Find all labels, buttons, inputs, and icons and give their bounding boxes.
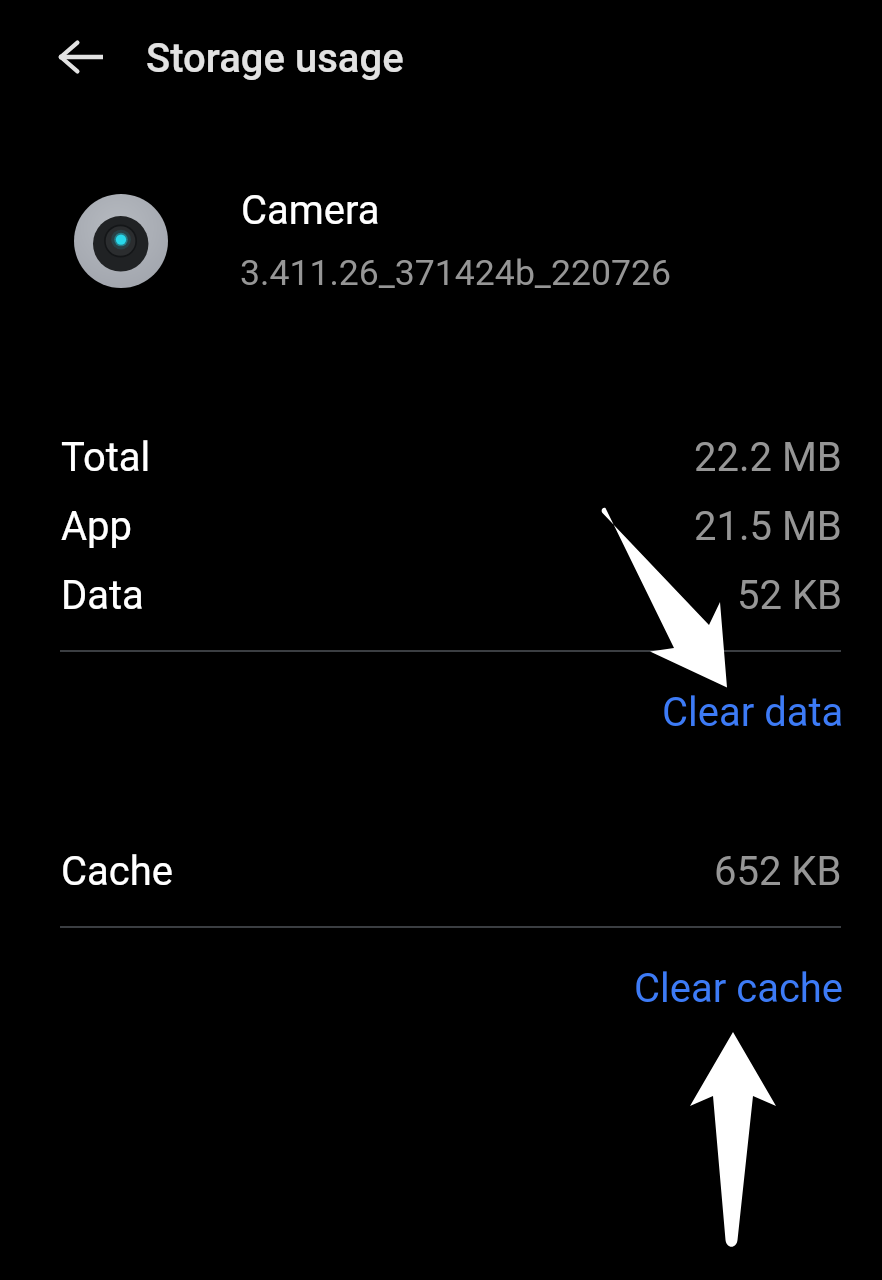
button[interactable]: Data <box>0 572 882 630</box>
button[interactable]: Clear data <box>0 672 882 752</box>
staticText: Cache <box>61 848 173 895</box>
staticText: Data <box>61 572 144 619</box>
button[interactable]: Clear cache <box>0 948 882 1028</box>
button[interactable]: App <box>0 503 882 561</box>
staticText: 22.2 MB <box>694 434 842 481</box>
staticText: 3.411.26_371424b_220726 <box>240 252 671 294</box>
staticText: 52 KB <box>737 572 842 619</box>
staticText: 21.5 MB <box>694 503 842 550</box>
button[interactable]: Back <box>45 22 115 92</box>
staticText: Total <box>61 434 151 481</box>
staticText: Clear cache <box>634 965 844 1012</box>
button[interactable]: Total <box>0 434 882 492</box>
button[interactable]: Cache <box>0 848 882 906</box>
staticText: 652 KB <box>714 848 842 895</box>
staticText: Clear data <box>662 689 844 736</box>
staticText: Camera <box>241 187 380 234</box>
staticText: Storage usage <box>146 35 404 82</box>
staticText: App <box>61 503 133 550</box>
